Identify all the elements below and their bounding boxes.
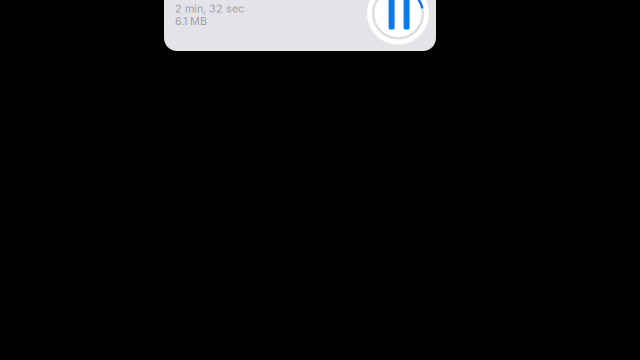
staticText: 6.1 MB: [175, 15, 207, 28]
button[interactable]: Pause download: [367, 0, 429, 44]
staticText: 2 min, 32 sec: [175, 2, 244, 15]
